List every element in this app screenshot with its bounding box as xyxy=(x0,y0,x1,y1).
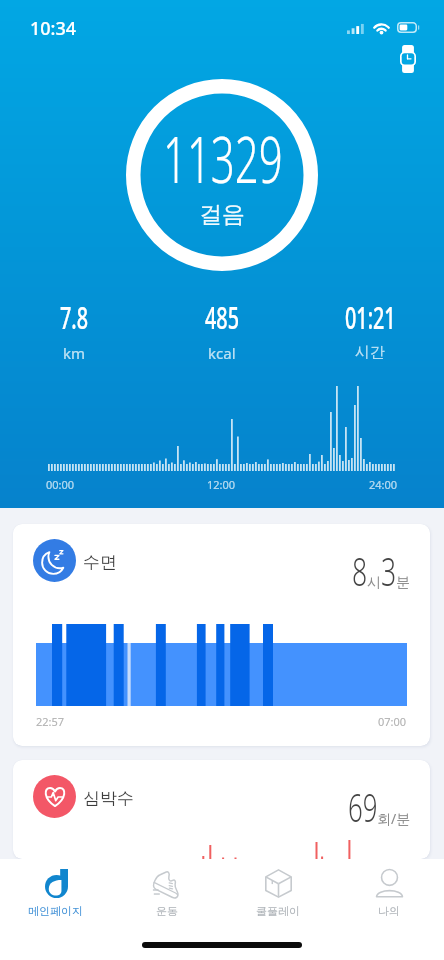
staticText: 24:00 xyxy=(369,477,398,492)
staticText: km xyxy=(63,343,86,363)
button[interactable]: 운동 xyxy=(111,859,222,929)
staticText: 분 xyxy=(396,574,410,592)
staticText: 시간 xyxy=(355,343,385,362)
staticText: 485 xyxy=(205,297,239,338)
staticText: 8 xyxy=(352,545,367,597)
button[interactable]: 메인페이지 xyxy=(0,859,111,929)
staticText: 심박수 xyxy=(83,788,134,809)
staticText: 00:00 xyxy=(46,477,75,492)
staticText: 나의 xyxy=(378,904,400,918)
staticText: 시 xyxy=(367,574,381,592)
staticText: 69 xyxy=(348,781,378,833)
button[interactable]: 쿨풀레이 xyxy=(222,859,333,929)
button[interactable]: 심박수 xyxy=(13,760,430,859)
staticText: 7.8 xyxy=(60,297,88,338)
staticText: 걸음 xyxy=(199,200,245,229)
staticText: 쿨풀레이 xyxy=(256,904,300,918)
staticText: 메인페이지 xyxy=(28,904,83,918)
staticText: 12:00 xyxy=(207,477,236,492)
staticText: 3 xyxy=(381,545,396,597)
button[interactable]: Connected watch xyxy=(392,38,424,80)
button[interactable]: 나의 xyxy=(333,859,444,929)
staticText: 01:21 xyxy=(345,297,396,338)
staticText: 07:00 xyxy=(378,714,407,729)
staticText: 10:34 xyxy=(30,16,77,41)
staticText: 운동 xyxy=(156,904,178,918)
button[interactable]: 수면 xyxy=(13,524,430,746)
staticText: 회/분 xyxy=(377,809,411,828)
staticText: 22:57 xyxy=(36,714,65,729)
staticText: kcal xyxy=(208,343,236,363)
staticText: 11329 xyxy=(163,115,283,202)
staticText: 수면 xyxy=(83,552,117,573)
